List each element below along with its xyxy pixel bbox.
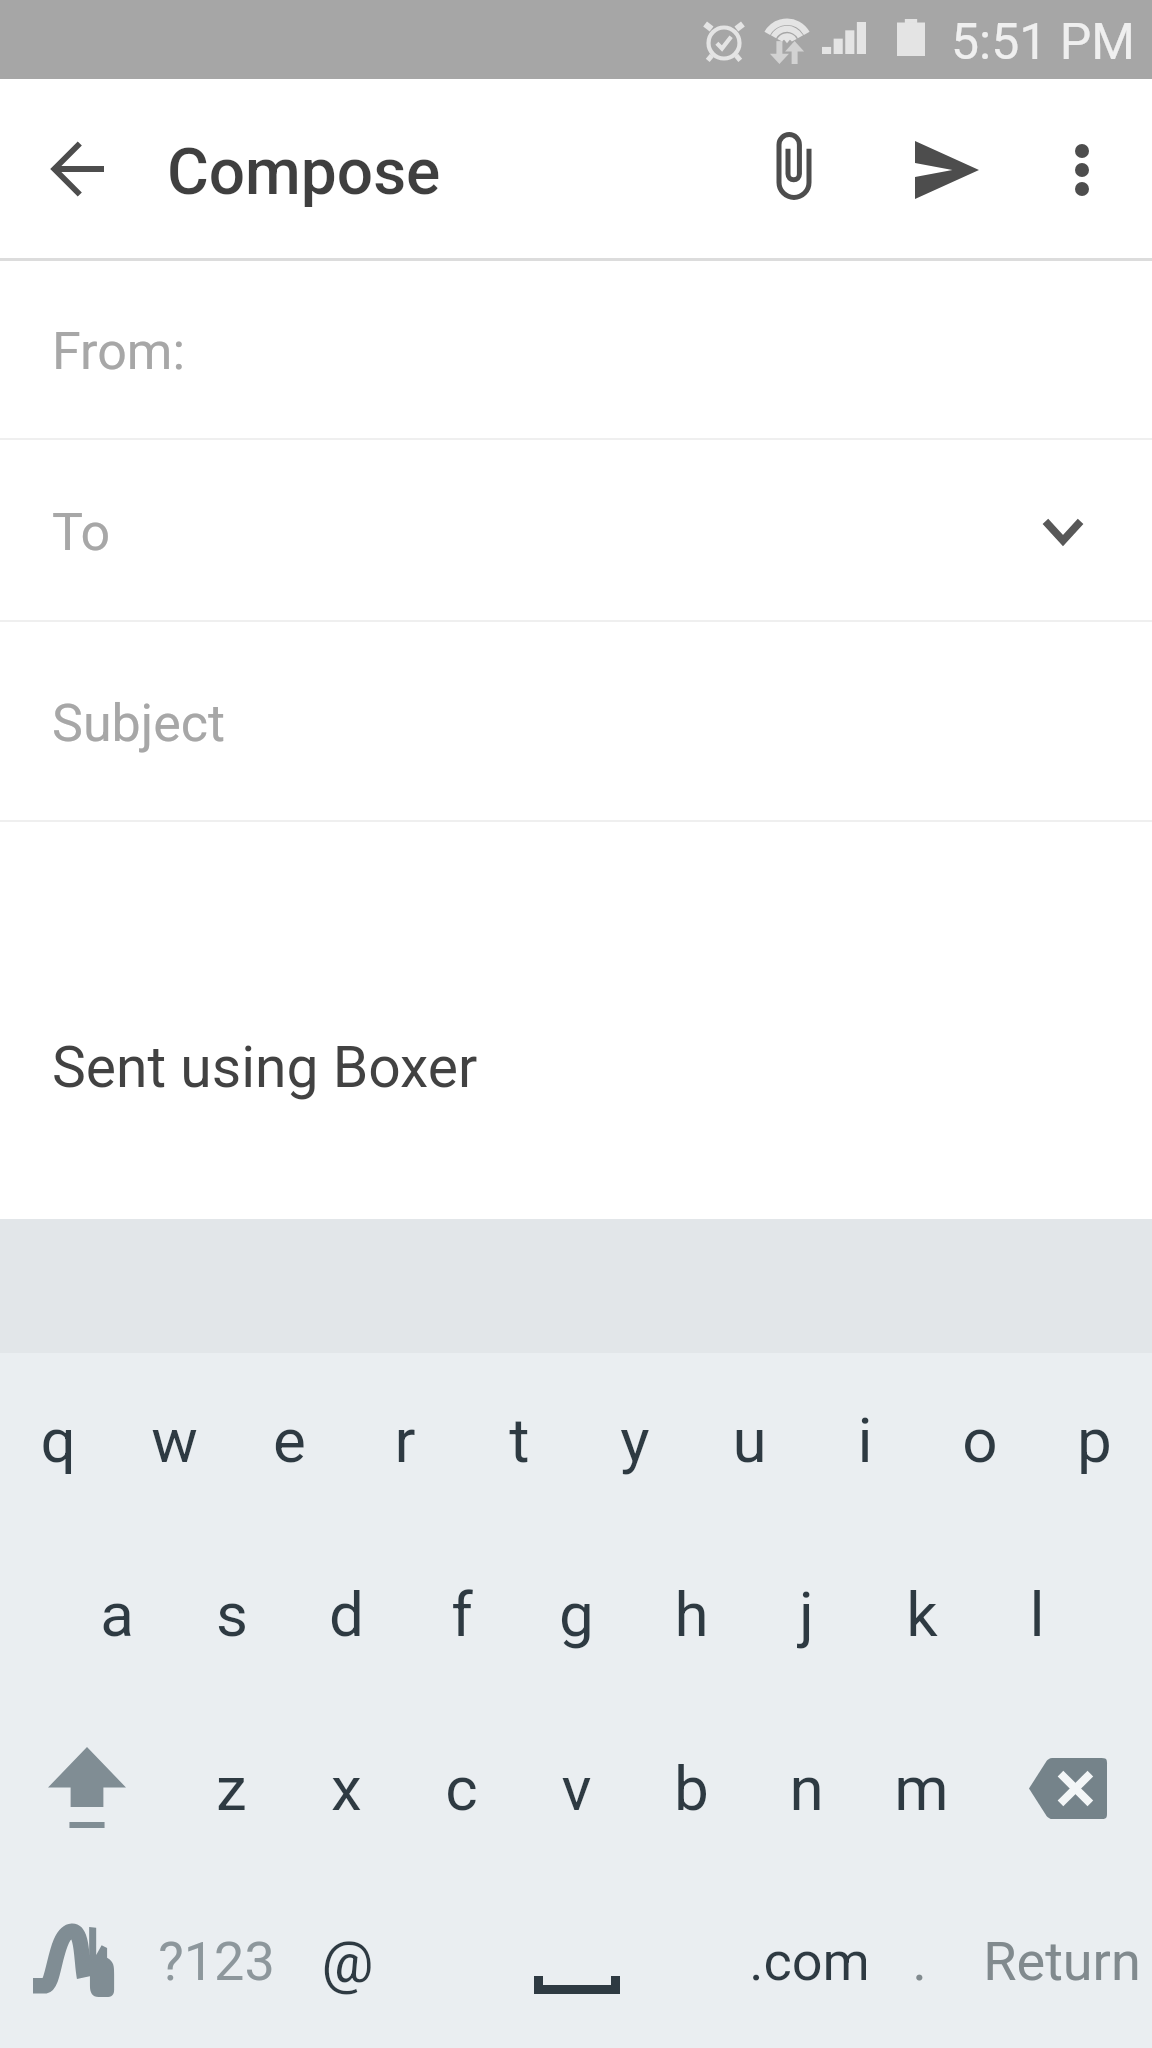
staticText: w: [151, 1404, 198, 1477]
staticText: Sent using Boxer: [52, 1034, 478, 1101]
staticText: s: [216, 1578, 248, 1651]
button[interactable]: d: [289, 1527, 404, 1701]
staticText: .: [912, 1930, 927, 1993]
button[interactable]: y: [577, 1353, 692, 1527]
staticText: k: [906, 1578, 938, 1651]
button[interactable]: r: [347, 1353, 462, 1527]
button[interactable]: z: [174, 1701, 289, 1875]
button[interactable]: @: [289, 1875, 405, 2048]
button[interactable]: t: [462, 1353, 577, 1527]
button[interactable]: Show Cc and Bcc: [1033, 501, 1093, 561]
staticText: r: [394, 1404, 416, 1477]
button[interactable]: Attach file: [742, 114, 846, 218]
staticText: i: [857, 1404, 873, 1477]
button[interactable]: n: [749, 1701, 864, 1875]
button[interactable]: Navigate up: [30, 121, 126, 217]
staticText: b: [674, 1752, 709, 1825]
staticText: Return: [983, 1930, 1141, 1993]
staticText: From:: [52, 321, 186, 382]
button[interactable]: e: [232, 1353, 347, 1527]
staticText: To: [52, 502, 111, 563]
staticText: g: [559, 1578, 594, 1651]
staticText: 5:51 PM: [951, 13, 1136, 72]
staticText: p: [1077, 1404, 1112, 1477]
button[interactable]: j: [749, 1527, 864, 1701]
staticText: j: [799, 1578, 814, 1651]
staticText: m: [894, 1752, 949, 1825]
button[interactable]: l: [979, 1527, 1094, 1701]
staticText: .com: [749, 1930, 866, 1993]
button[interactable]: c: [404, 1701, 519, 1875]
button[interactable]: Send: [895, 118, 999, 222]
staticText: f: [451, 1578, 473, 1651]
staticText: n: [789, 1752, 824, 1825]
staticText: z: [216, 1752, 247, 1825]
button[interactable]: x: [289, 1701, 404, 1875]
staticText: t: [509, 1404, 530, 1477]
button[interactable]: v: [519, 1701, 634, 1875]
staticText: h: [674, 1578, 709, 1651]
button[interactable]: .: [866, 1875, 972, 2048]
staticText: d: [329, 1578, 364, 1651]
button[interactable]: Sent using Boxer: [0, 822, 1152, 1219]
button[interactable]: a: [59, 1527, 174, 1701]
staticText: a: [100, 1578, 134, 1651]
button[interactable]: s: [174, 1527, 289, 1701]
button[interactable]: f: [404, 1527, 519, 1701]
button[interactable]: Shift: [0, 1701, 174, 1875]
button[interactable]: Handwriting: [0, 1875, 143, 2048]
staticText: x: [331, 1752, 362, 1825]
staticText: Subject: [52, 693, 225, 754]
button[interactable]: g: [519, 1527, 634, 1701]
button[interactable]: To: [0, 440, 1152, 622]
button[interactable]: .com: [749, 1875, 866, 2048]
staticText: o: [962, 1404, 998, 1477]
staticText: Compose: [167, 135, 441, 210]
button[interactable]: u: [692, 1353, 807, 1527]
button[interactable]: o: [922, 1353, 1037, 1527]
button[interactable]: q: [0, 1353, 116, 1527]
button[interactable]: Return: [972, 1875, 1152, 2048]
button[interactable]: h: [634, 1527, 749, 1701]
staticText: e: [273, 1404, 306, 1477]
button[interactable]: w: [116, 1353, 232, 1527]
staticText: @: [321, 1928, 374, 1996]
button[interactable]: Delete: [979, 1701, 1152, 1875]
staticText: l: [1029, 1578, 1045, 1651]
staticText: y: [620, 1404, 650, 1477]
button[interactable]: i: [807, 1353, 922, 1527]
staticText: q: [40, 1404, 76, 1477]
button[interactable]: Space: [405, 1875, 749, 2048]
button[interactable]: k: [864, 1527, 979, 1701]
button[interactable]: b: [634, 1701, 749, 1875]
button[interactable]: m: [864, 1701, 979, 1875]
staticText: v: [561, 1752, 592, 1825]
staticText: c: [445, 1752, 478, 1825]
staticText: u: [732, 1404, 767, 1477]
button[interactable]: Subject: [0, 622, 1152, 822]
button[interactable]: p: [1037, 1353, 1152, 1527]
staticText: ?123: [158, 1930, 275, 1993]
button[interactable]: More options: [1030, 118, 1134, 222]
button[interactable]: ?123: [143, 1875, 289, 2048]
button[interactable]: From:: [0, 261, 1152, 440]
